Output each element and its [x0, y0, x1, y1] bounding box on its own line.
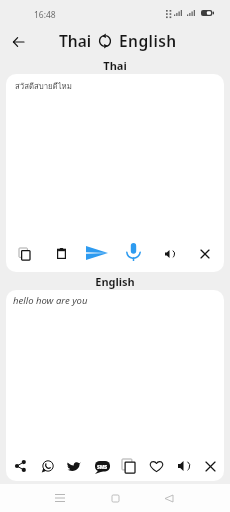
button[interactable]: Twitter: [62, 454, 86, 478]
button[interactable]: Back: [5, 28, 32, 55]
staticText: สวัสดีสบายดีไหม: [15, 80, 72, 92]
button[interactable]: Recent apps: [48, 486, 72, 510]
button[interactable]: Home: [103, 486, 127, 510]
button[interactable]: Share: [8, 454, 32, 478]
button[interactable]: WhatsApp: [35, 454, 59, 478]
button[interactable]: Back: [157, 486, 181, 510]
button[interactable]: Copy: [116, 454, 140, 478]
staticText: Thai: [0, 58, 230, 73]
staticText: SMS: [97, 464, 108, 471]
staticText: hello how are you: [13, 294, 88, 307]
button[interactable]: Close: [198, 454, 222, 478]
staticText: 16:48: [34, 9, 56, 21]
button[interactable]: Speak: [171, 454, 195, 478]
button[interactable]: English: [119, 30, 177, 51]
button[interactable]: Clear: [193, 242, 217, 266]
button[interactable]: Translate: [85, 241, 109, 265]
button[interactable]: Favorite: [144, 454, 168, 478]
button[interactable]: Copy: [12, 242, 36, 266]
button[interactable]: Swap languages: [93, 29, 117, 53]
button[interactable]: Send SMS: [90, 455, 114, 479]
button[interactable]: Speak: [157, 242, 181, 266]
staticText: English: [0, 274, 230, 289]
button[interactable]: Voice input: [121, 240, 145, 264]
button[interactable]: Thai: [59, 30, 92, 51]
button[interactable]: Paste: [49, 241, 73, 265]
